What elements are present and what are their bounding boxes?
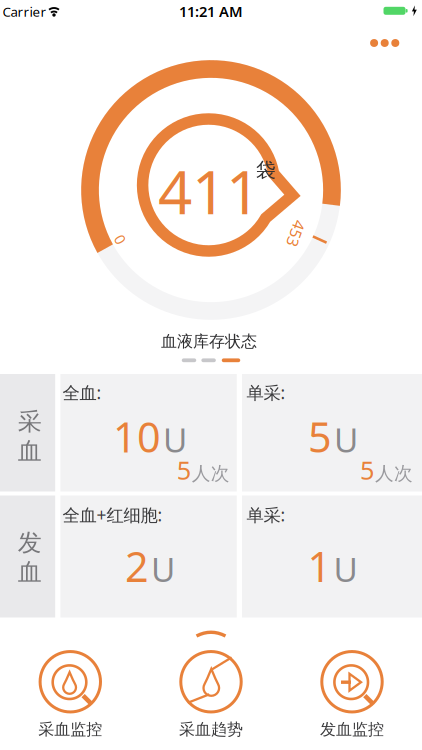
staticText: 采血监控 (38, 720, 102, 739)
staticText: 411 (158, 151, 260, 231)
staticText: 5 (308, 409, 332, 464)
staticText: 人次 (192, 462, 230, 485)
staticText: 10 (113, 409, 161, 464)
staticText: 单采: (246, 503, 285, 526)
staticText: 采 (18, 407, 42, 436)
button[interactable]: 采血趋势 (156, 631, 266, 741)
staticText: 1 (307, 539, 331, 593)
staticText: 全血+红细胞: (62, 503, 162, 526)
staticText: 453 (282, 223, 309, 244)
staticText: 2 (125, 539, 149, 593)
staticText: 发血监控 (320, 720, 384, 739)
staticText: Carrier (2, 3, 46, 20)
staticText: U (333, 547, 357, 591)
staticText: 血 (18, 436, 42, 466)
staticText: 全血: (62, 381, 101, 404)
staticText: 5 (360, 453, 374, 487)
staticText: 5 (177, 453, 191, 487)
staticText: U (163, 417, 187, 462)
staticText: 血 (18, 557, 42, 587)
button[interactable]: 发血监控 (297, 631, 407, 741)
staticText: 发 (18, 528, 42, 557)
button[interactable] (370, 39, 399, 47)
staticText: 人次 (375, 462, 413, 485)
button[interactable]: 采血监控 (15, 631, 125, 741)
staticText: 11:21 AM (179, 2, 243, 21)
staticText: U (151, 547, 175, 591)
staticText: 袋 (256, 158, 276, 182)
staticText: 0 (116, 229, 124, 249)
staticText: 血液库存状态 (161, 332, 257, 351)
staticText: U (334, 417, 358, 462)
staticText: 采血趋势 (179, 720, 243, 739)
staticText: 单采: (246, 381, 285, 404)
